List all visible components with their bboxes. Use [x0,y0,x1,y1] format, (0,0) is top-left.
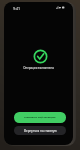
button[interactable]: Совершить ещё операцию [14,112,66,123]
staticText: Совершить ещё операцию [24,116,56,119]
staticText: Операция выполнена [23,66,54,70]
staticText: Вернуться на главную [24,129,57,133]
staticText: 9:41 [13,6,21,11]
button[interactable]: Вернуться на главную [14,126,66,135]
